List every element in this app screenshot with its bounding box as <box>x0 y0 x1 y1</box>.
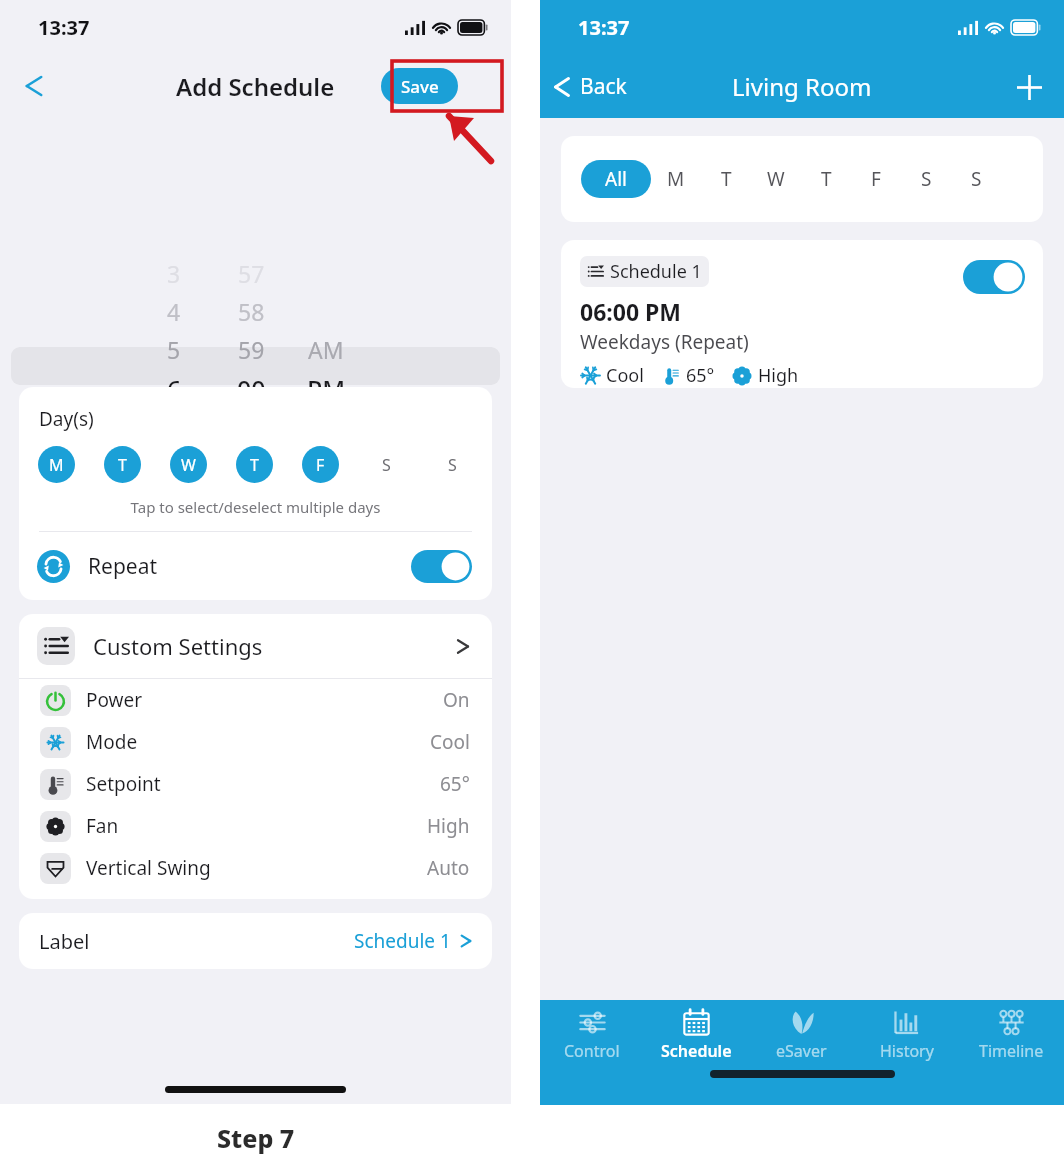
staticText: 5 <box>167 334 181 362</box>
staticText: Setpoint <box>86 771 161 797</box>
staticText: F <box>316 454 325 476</box>
staticText: 6 <box>167 372 182 400</box>
button[interactable]: Custom Settings <box>19 614 492 678</box>
staticText: 4 <box>167 296 181 324</box>
staticText: Add Schedule <box>176 70 335 103</box>
button[interactable]: W <box>170 446 207 483</box>
staticText: Mode <box>86 729 138 755</box>
button[interactable]: Schedule <box>644 1000 749 1070</box>
staticText: Tap to select/deselect multiple days <box>19 497 492 517</box>
staticText: High <box>427 813 470 839</box>
staticText: W <box>181 454 196 476</box>
staticText: 06:00 PM <box>580 296 682 327</box>
staticText: Timeline <box>979 1040 1044 1062</box>
button[interactable]: F <box>851 160 901 198</box>
button[interactable]: Back <box>553 72 627 101</box>
button[interactable]: T <box>104 446 141 483</box>
button[interactable]: Fan <box>19 805 492 847</box>
button[interactable]: All <box>581 160 651 198</box>
staticText: AM <box>308 334 344 362</box>
button[interactable]: Add schedule <box>1008 66 1050 108</box>
staticText: S <box>921 166 932 192</box>
button[interactable]: Setpoint <box>19 763 492 805</box>
staticText: Living Room <box>732 70 872 103</box>
button[interactable]: Power <box>19 679 492 721</box>
button[interactable]: Schedule 1 <box>561 240 1043 388</box>
staticText: Cool <box>430 729 470 755</box>
staticText: T <box>821 166 832 192</box>
button[interactable]: F <box>302 446 339 483</box>
button[interactable]: eSaver <box>749 1000 854 1070</box>
staticText: Auto <box>427 855 470 881</box>
staticText: M <box>49 454 64 476</box>
button[interactable]: T <box>801 160 851 198</box>
staticText: 02 <box>238 448 265 476</box>
staticText: 03 <box>238 486 265 514</box>
staticText: Fan <box>86 813 119 839</box>
button[interactable] <box>963 260 1025 294</box>
staticText: 3 <box>167 258 181 286</box>
staticText: Schedule 1 <box>610 259 702 284</box>
button[interactable]: M <box>651 160 701 198</box>
button[interactable]: S <box>951 160 1001 198</box>
staticText: Save <box>401 75 439 98</box>
staticText: Schedule 1 <box>354 928 451 954</box>
staticText: High <box>758 363 799 388</box>
staticText: 65° <box>440 771 470 797</box>
staticText: Vertical Swing <box>86 855 211 881</box>
staticText: Day(s) <box>39 406 94 432</box>
staticText: Schedule <box>661 1040 732 1062</box>
staticText: T <box>250 454 259 476</box>
button[interactable]: S <box>434 446 471 483</box>
button[interactable]: Control <box>540 1000 644 1070</box>
staticText: Cool <box>606 363 644 388</box>
button[interactable]: M <box>38 446 75 483</box>
staticText: On <box>443 687 470 713</box>
staticText: eSaver <box>776 1040 827 1062</box>
staticText: 8 <box>167 448 181 476</box>
staticText: 00 <box>237 372 266 400</box>
staticText: 9 <box>167 486 181 514</box>
button[interactable]: Vertical Swing <box>19 847 492 889</box>
button[interactable]: T <box>236 446 273 483</box>
button[interactable]: S <box>368 446 405 483</box>
button[interactable]: Timeline <box>959 1000 1064 1070</box>
staticText: F <box>871 166 881 192</box>
staticText: Label <box>39 928 90 955</box>
button[interactable]: Repeat <box>19 532 492 600</box>
staticText: Step 7 <box>217 1121 295 1155</box>
staticText: M <box>667 166 685 192</box>
staticText: 57 <box>238 258 265 286</box>
button[interactable]: W <box>751 160 801 198</box>
button[interactable]: Label <box>19 913 492 969</box>
staticText: 59 <box>238 334 265 362</box>
button[interactable]: History <box>854 1000 959 1070</box>
staticText: All <box>605 166 627 192</box>
staticText: 65° <box>686 363 715 388</box>
button[interactable]: Mode <box>19 721 492 763</box>
staticText: Power <box>86 687 143 713</box>
staticText: 13:37 <box>578 14 630 41</box>
staticText: Custom Settings <box>93 631 263 661</box>
staticText: Back <box>580 72 627 101</box>
staticText: T <box>118 454 127 476</box>
button[interactable]: Back <box>12 64 56 108</box>
staticText: PM <box>307 372 346 400</box>
staticText: 13:37 <box>38 14 90 41</box>
button[interactable]: S <box>901 160 951 198</box>
staticText: S <box>971 166 982 192</box>
staticText: S <box>448 454 457 476</box>
button[interactable]: Save <box>381 68 458 104</box>
button[interactable]: T <box>701 160 751 198</box>
staticText: History <box>880 1040 934 1062</box>
staticText: Weekdays (Repeat) <box>580 329 749 355</box>
staticText: 58 <box>238 296 265 324</box>
staticText: S <box>382 454 391 476</box>
staticText: Repeat <box>88 552 158 581</box>
staticText: Control <box>564 1040 620 1062</box>
staticText: T <box>721 166 732 192</box>
staticText: W <box>767 166 785 192</box>
